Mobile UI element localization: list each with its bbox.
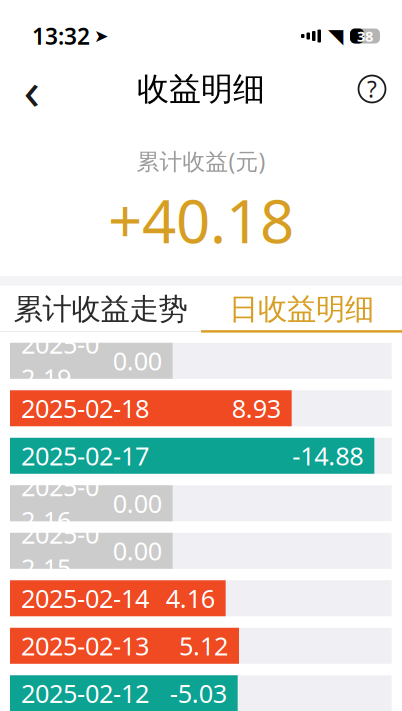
button[interactable]: 2025-02-17 xyxy=(10,438,402,474)
staticText: 2025-02-15 xyxy=(21,517,99,584)
button[interactable]: 2025-02-16 xyxy=(10,485,402,521)
staticText: 8.93 xyxy=(232,391,281,425)
staticText: ? xyxy=(367,74,377,104)
button[interactable]: 2025-02-13 xyxy=(10,628,402,664)
staticText: +40.18 xyxy=(108,180,294,260)
staticText: 2025-02-14 xyxy=(21,581,149,615)
button[interactable]: 累计收益走势 xyxy=(0,286,201,333)
staticText: 0.00 xyxy=(113,486,162,520)
button[interactable]: 日收益明细 xyxy=(201,286,402,333)
staticText: 收益明细 xyxy=(137,69,265,109)
button[interactable]: 2025-02-15 xyxy=(10,533,402,569)
staticText: 2025-02-17 xyxy=(21,439,149,473)
button[interactable]: 2025-02-18 xyxy=(10,390,402,426)
staticText: -5.03 xyxy=(170,676,227,710)
staticText: 4.16 xyxy=(166,581,215,615)
staticText: 2025-02-12 xyxy=(21,676,149,710)
staticText: 38 xyxy=(357,26,373,46)
staticText: 2025-02-13 xyxy=(21,629,149,663)
staticText: ➤ xyxy=(94,26,109,46)
staticText: ‹ xyxy=(23,54,40,124)
staticText: 2025-02-19 xyxy=(21,327,99,394)
staticText: ◥ xyxy=(328,25,343,47)
staticText: 0.00 xyxy=(113,344,162,378)
staticText: 5.12 xyxy=(179,629,228,663)
staticText: 13:32 xyxy=(32,21,90,51)
button[interactable]: Help xyxy=(350,67,394,111)
staticText: 0.00 xyxy=(113,534,162,568)
button[interactable]: Back xyxy=(8,65,56,113)
staticText: -14.88 xyxy=(292,439,363,473)
staticText: 累计收益走势 xyxy=(13,291,187,327)
staticText: 累计收益(元) xyxy=(136,146,265,176)
button[interactable]: 2025-02-12 xyxy=(10,675,402,711)
staticText: 日收益明细 xyxy=(229,291,374,327)
button[interactable]: 2025-02-14 xyxy=(10,580,402,616)
button[interactable]: 2025-02-19 xyxy=(10,343,402,379)
staticText: 2025-02-18 xyxy=(21,391,149,425)
staticText: 2025-02-16 xyxy=(21,470,99,537)
